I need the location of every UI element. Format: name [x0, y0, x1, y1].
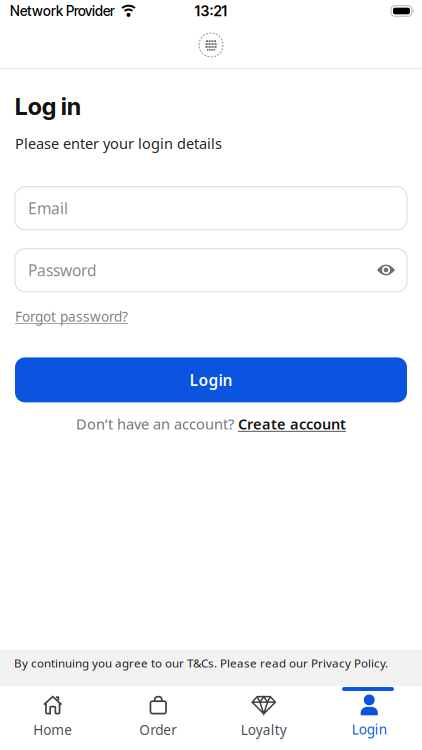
button[interactable]: Login	[316, 694, 422, 738]
button[interactable]: Home	[0, 694, 105, 739]
staticText: Loyalty	[241, 721, 287, 739]
button[interactable]: Loyalty	[211, 694, 316, 739]
button[interactable]: Create account	[238, 414, 346, 433]
staticText: Forgot password?	[15, 308, 128, 325]
staticText: Order	[139, 721, 177, 739]
staticText: Email	[28, 198, 68, 218]
staticText: Please enter your login details	[15, 134, 222, 153]
staticText: 13:21	[194, 3, 227, 19]
staticText: Log in	[15, 93, 81, 120]
staticText: Network Provider	[10, 3, 115, 19]
staticText: Login	[189, 370, 232, 390]
staticText: Password	[28, 260, 97, 280]
button[interactable]: Order	[105, 694, 211, 739]
button[interactable]: Forgot password?	[15, 308, 128, 325]
staticText: Home	[33, 721, 72, 739]
button[interactable]: Login	[15, 357, 407, 402]
staticText: By continuing you agree to our T&Cs. Ple…	[14, 655, 388, 670]
staticText: Create account	[238, 414, 346, 433]
button[interactable]	[377, 264, 395, 277]
staticText: Login	[352, 720, 387, 738]
staticText: Don’t have an account?	[76, 414, 238, 433]
